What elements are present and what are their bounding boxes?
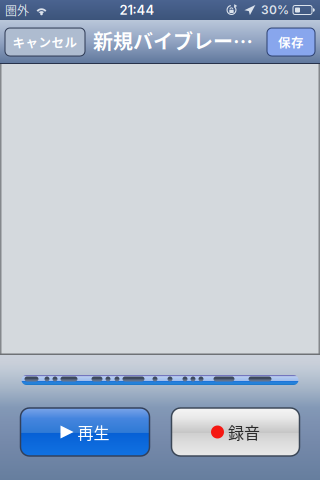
staticText: 保存: [278, 33, 304, 51]
button[interactable]: 再生: [20, 408, 149, 456]
staticText: 録音: [228, 420, 260, 444]
staticText: 再生: [77, 420, 109, 444]
button[interactable]: キャンセル: [5, 28, 85, 56]
button[interactable]: 保存: [267, 28, 315, 56]
staticText: 圏外: [5, 1, 29, 19]
button[interactable]: 録音: [171, 408, 299, 456]
staticText: 21:44: [119, 2, 154, 18]
staticText: 30%: [261, 3, 289, 17]
staticText: キャンセル: [12, 33, 77, 51]
staticText: 新規バイブレー…: [93, 26, 253, 55]
